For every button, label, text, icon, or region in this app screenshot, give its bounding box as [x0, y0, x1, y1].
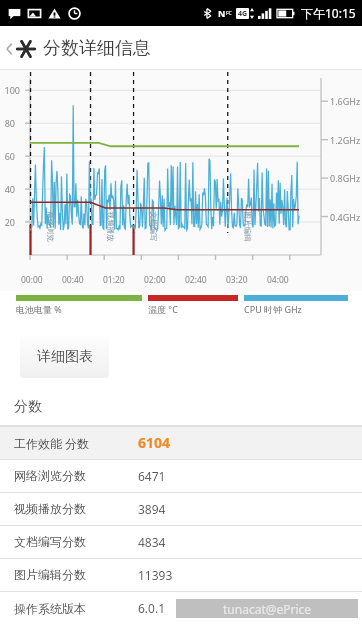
staticText: 文档编写分数	[14, 534, 138, 549]
staticText: 20	[4, 216, 15, 228]
staticText: CPU 时钟 GHz	[244, 303, 302, 315]
staticText: 04:00	[267, 274, 289, 286]
button[interactable]: 图片编辑分数	[0, 558, 362, 591]
staticText: 6471	[138, 468, 166, 484]
staticText: 02:00	[144, 274, 166, 286]
staticText: 00:00	[21, 274, 43, 286]
button[interactable]: Back	[0, 33, 157, 64]
staticText: 电池电量 %	[16, 303, 62, 315]
staticText: 图片编辑分数	[14, 567, 138, 582]
staticText: 02:40	[185, 274, 207, 286]
staticText: 详细图表	[37, 348, 93, 366]
staticText: 6104	[138, 433, 171, 452]
button[interactable]: 工作效能 分数	[0, 426, 362, 459]
staticText: 下午10:15	[301, 5, 356, 21]
staticText: 温度 °C	[148, 303, 178, 315]
staticText: tunacat@ePrice	[223, 601, 312, 617]
staticText: 分数	[14, 398, 42, 416]
button[interactable]: 网络浏览分数	[0, 459, 362, 492]
staticText: 图片编辑	[242, 211, 251, 241]
staticText: 网络浏览	[45, 211, 54, 241]
staticText: 3894	[138, 501, 166, 517]
staticText: 6.0.1	[138, 600, 166, 616]
staticText: 1.6GHz	[330, 95, 361, 107]
staticText: 工作效能 分数	[14, 435, 138, 451]
staticText: 0.8GHz	[330, 172, 361, 184]
staticText: N	[218, 7, 226, 19]
staticText: 视频播放分数	[14, 501, 138, 516]
staticText: 01:20	[103, 274, 125, 286]
staticText: 网络浏览分数	[14, 468, 138, 483]
staticText: 100	[4, 84, 20, 96]
staticText: 00:40	[62, 274, 84, 286]
button[interactable]: 详细图表	[20, 336, 109, 378]
button[interactable]: 文档编写分数	[0, 525, 362, 558]
staticText: 03:20	[226, 274, 248, 286]
staticText: 40	[4, 183, 15, 195]
staticText: 分数详细信息	[43, 37, 151, 60]
staticText: 60	[4, 150, 15, 162]
staticText: 80	[4, 117, 15, 129]
staticText: 4834	[138, 534, 166, 550]
staticText: 文档编写	[148, 211, 157, 241]
staticText: 1.2GHz	[330, 134, 361, 146]
staticText: 11393	[138, 567, 173, 583]
staticText: 0.4GHz	[330, 211, 361, 223]
staticText: FC	[226, 10, 232, 17]
staticText: 操作系统版本	[14, 601, 138, 616]
staticText: 视频播放	[105, 211, 114, 241]
button[interactable]: 视频播放分数	[0, 492, 362, 525]
staticText: 4G	[238, 9, 248, 19]
